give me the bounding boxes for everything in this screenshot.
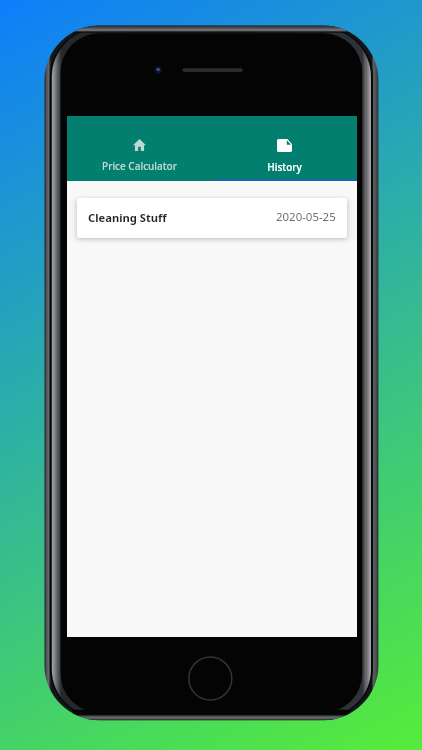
button[interactable]: Price Calculator: [67, 116, 212, 181]
staticText: 2020-05-25: [276, 209, 336, 225]
button[interactable]: History: [212, 116, 357, 181]
staticText: Cleaning Stuff: [88, 210, 167, 225]
button[interactable]: Cleaning Stuff: [77, 198, 347, 238]
other: Price Calculator: [133, 139, 146, 151]
staticText: History: [267, 160, 302, 174]
staticText: Price Calculator: [102, 159, 177, 173]
other: History: [277, 139, 292, 152]
